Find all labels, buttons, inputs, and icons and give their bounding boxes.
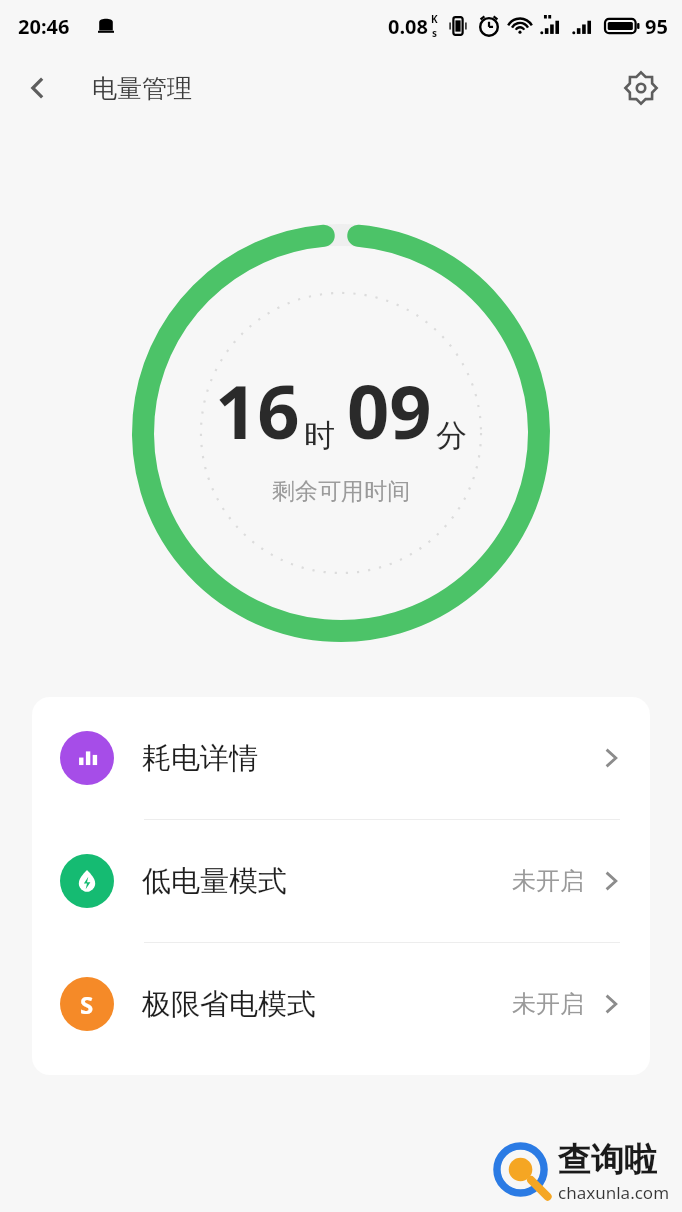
button[interactable]: 低电量模式 [32, 820, 650, 942]
button[interactable]: Back [10, 60, 66, 116]
button[interactable]: S [32, 943, 650, 1065]
staticText: 耗电详情 [142, 740, 258, 777]
staticText: 时 [304, 416, 335, 455]
staticText: S [80, 988, 94, 1021]
staticText: 20:46 [18, 13, 70, 40]
staticText: 95 [645, 13, 668, 40]
staticText: K [431, 12, 438, 26]
staticText: 极限省电模式 [142, 986, 316, 1023]
staticText: chaxunla.com [558, 1181, 670, 1204]
staticText: s [432, 26, 438, 40]
staticText: 16 [215, 360, 300, 461]
staticText: 未开启 [512, 866, 584, 896]
staticText: 剩余可用时间 [272, 477, 410, 506]
staticText: 未开启 [512, 989, 584, 1019]
staticText: 低电量模式 [142, 863, 287, 900]
button[interactable]: 耗电详情 [32, 697, 650, 819]
staticText: 0.08 [388, 13, 428, 40]
staticText: 09 [347, 360, 432, 461]
button[interactable]: Settings [614, 61, 668, 115]
staticText: 分 [436, 416, 467, 455]
staticText: 电量管理 [92, 73, 192, 104]
staticText: 查询啦 [558, 1139, 657, 1181]
